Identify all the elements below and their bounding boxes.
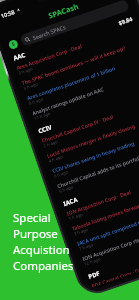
staticText: 1 h ago: [68, 212, 84, 222]
staticText: 7 h ago: [78, 242, 94, 253]
staticText: Special: [13, 210, 51, 226]
button[interactable]: Profile: [8, 39, 19, 50]
staticText: Analyst ratings update on AAC: [31, 85, 105, 116]
staticText: ION Acquisition Corp · Deal: [66, 188, 132, 217]
staticText: 3 h ago: [18, 66, 34, 77]
staticText: 6 h ago: [53, 169, 69, 180]
staticText: 2 h ago: [43, 139, 59, 149]
button[interactable]: Lucid Motors merger is finally closing: [46, 111, 139, 167]
staticText: 12 h ago: [83, 256, 102, 268]
button[interactable]: AAC: [12, 14, 139, 128]
button[interactable]: Churchill Capital Corp IV · Deal: [40, 96, 139, 152]
button[interactable]: Taboola listing moves forward: [71, 184, 139, 240]
staticText: 5 h ago: [23, 81, 39, 92]
staticText: ION Acquisition Corp rises: [81, 234, 139, 262]
button[interactable]: PDF Capital Corp · Deal: [91, 242, 139, 290]
button[interactable]: ION Acquisition Corp · Deal: [66, 169, 139, 225]
staticText: Churchill Capital adds to its portfolio: [56, 153, 139, 189]
staticText: Search SPACs: [32, 23, 67, 41]
staticText: AAC: [12, 51, 27, 62]
staticText: Ares Acquisition Corp · Deal: [15, 42, 83, 71]
staticText: PDF: [87, 269, 101, 281]
staticText: CCIV: [37, 123, 53, 135]
button[interactable]: IACA: [62, 159, 139, 273]
staticText: PDF Capital Corp · Deal: [91, 264, 139, 287]
button[interactable]: Analyst ratings update on AAC: [31, 69, 139, 125]
button[interactable]: Ares Acquisition Corp · Deal: [15, 23, 139, 79]
button[interactable]: Ares completes placement of 1 billion: [26, 54, 139, 110]
button[interactable]: IACA unit split completed today: [76, 199, 139, 255]
staticText: 3 h ago: [73, 227, 89, 237]
staticText: $9.84: [117, 15, 134, 26]
button[interactable]: CCIV shares swing in heavy trading: [51, 126, 139, 182]
staticText: SPACash: [47, 1, 80, 21]
staticText: IACA: [62, 196, 79, 208]
staticText: Ares completes placement of 1 billion: [26, 64, 116, 101]
staticText: 11 h ago: [33, 110, 52, 122]
staticText: Lucid Motors merger is finally closing: [46, 122, 136, 159]
button[interactable]: Search SPACs: [19, 0, 130, 47]
button[interactable]: PDF: [87, 232, 139, 290]
button[interactable]: The SPAC boom continues — will it keep u…: [21, 38, 139, 95]
staticText: 4 h ago: [48, 154, 64, 165]
staticText: S: [11, 41, 16, 48]
staticText: Taboola listing moves forward: [71, 201, 139, 232]
staticText: Purpose: [13, 226, 58, 242]
staticText: 9 h ago: [58, 184, 74, 195]
staticText: The SPAC boom continues — will it keep u…: [21, 44, 126, 86]
staticText: 10:58: [0, 8, 16, 19]
staticText: Acquistion: [13, 242, 70, 258]
staticText: CCIV shares swing in heavy trading: [51, 139, 135, 174]
staticText: 8 h ago: [28, 96, 44, 107]
button[interactable]: Churchill Capital adds to its portfolio: [56, 141, 139, 198]
button[interactable]: ION Acquisition Corp rises: [81, 214, 139, 270]
staticText: Churchill Capital Corp IV · Deal: [40, 112, 115, 144]
staticText: IACA unit split completed today: [76, 214, 139, 247]
staticText: Companies: [13, 258, 74, 274]
button[interactable]: CCIV: [37, 87, 139, 200]
